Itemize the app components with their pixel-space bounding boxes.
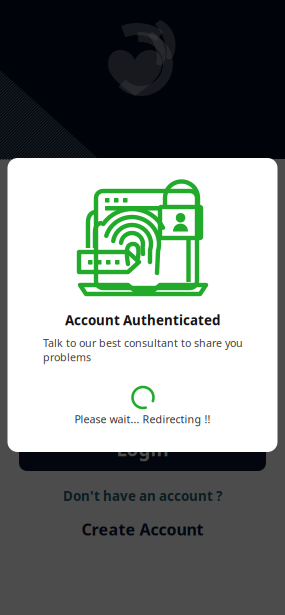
button[interactable]: Login: [19, 427, 266, 471]
button[interactable]: Don't have an account ?: [63, 487, 222, 505]
staticText: Don't have an account ?: [63, 487, 222, 505]
staticText: Please wait... Redirecting !!: [74, 412, 210, 426]
staticText: Account Authenticated: [65, 311, 220, 329]
staticText: Create Account: [81, 519, 203, 540]
button[interactable]: Create Account: [81, 519, 203, 540]
staticText: Login: [116, 437, 168, 461]
staticText: Talk to our best consultant to share you…: [43, 336, 243, 364]
